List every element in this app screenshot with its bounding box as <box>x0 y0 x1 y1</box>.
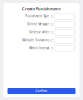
staticText: Within Interval <box>29 46 49 50</box>
button[interactable]: Multiple Violations <box>3 36 79 44</box>
button[interactable]: Punishment Type <box>3 12 79 20</box>
staticText: Confirm <box>35 89 47 93</box>
staticText: v <box>73 14 74 18</box>
staticText: Punishment Type <box>25 14 49 18</box>
staticText: Create Punishment <box>22 6 61 11</box>
button[interactable]: Confirm <box>7 88 75 94</box>
button[interactable]: Delete Message <box>3 20 79 28</box>
button[interactable]: Within Interval <box>3 44 79 52</box>
staticText: Delete Message <box>27 22 49 26</box>
staticText: Defense After <box>29 30 49 34</box>
button[interactable]: Defense After <box>3 28 79 36</box>
staticText: v <box>73 38 74 42</box>
staticText: v <box>73 22 74 26</box>
staticText: v <box>73 30 74 34</box>
staticText: v <box>73 46 74 50</box>
staticText: Multiple Violations <box>22 38 49 42</box>
